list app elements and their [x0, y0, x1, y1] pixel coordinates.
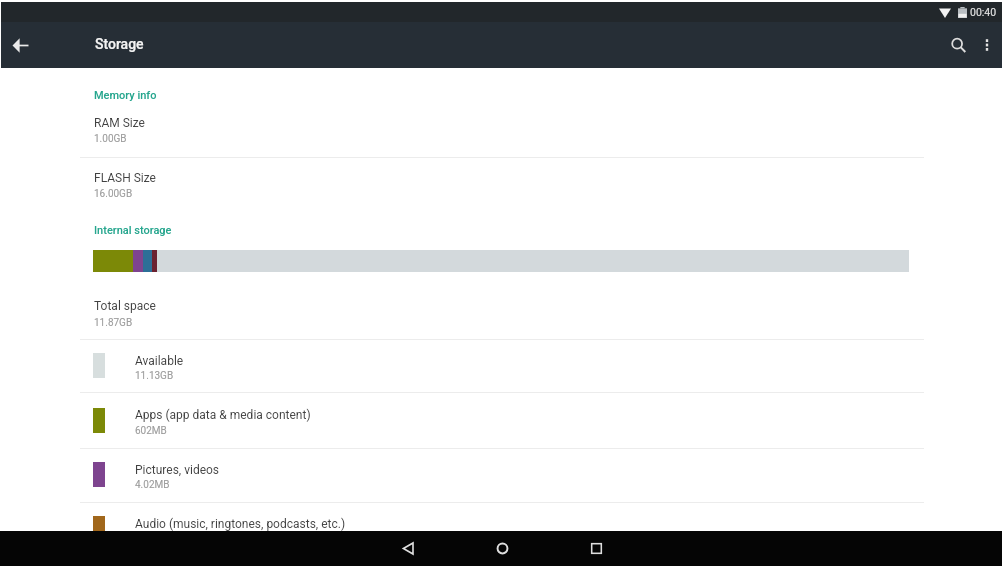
staticText: Storage: [95, 36, 144, 52]
staticText: 602MB: [135, 425, 167, 437]
staticText: 00:40: [970, 6, 997, 18]
staticText: FLASH Size: [94, 171, 156, 185]
button[interactable]: Search: [942, 29, 974, 61]
button[interactable]: Total space: [0, 285, 1002, 339]
staticText: 1.00GB: [94, 133, 127, 145]
staticText: Apps (app data & media content): [135, 408, 311, 422]
staticText: Internal storage: [94, 224, 172, 237]
button[interactable]: Recent apps: [549, 531, 643, 566]
staticText: Available: [135, 354, 184, 368]
staticText: 16.00GB: [94, 188, 133, 200]
button[interactable]: Back: [361, 531, 455, 566]
button[interactable]: RAM Size: [0, 103, 1002, 157]
button[interactable]: More options: [972, 30, 1002, 60]
staticText: Pictures, videos: [135, 463, 220, 477]
staticText: Total space: [94, 299, 156, 313]
staticText: 4.02MB: [135, 479, 170, 491]
staticText: 11.87GB: [94, 317, 133, 329]
staticText: 11.13GB: [135, 370, 174, 382]
staticText: Audio (music, ringtones, podcasts, etc.): [135, 517, 346, 531]
button[interactable]: Navigate up: [6, 31, 34, 59]
button[interactable]: Apps (app data & media content): [0, 393, 1002, 447]
staticText: RAM Size: [94, 116, 145, 130]
button[interactable]: Pictures, videos: [0, 448, 1002, 501]
button[interactable]: Audio (music, ringtones, podcasts, etc.): [0, 502, 1002, 531]
staticText: Memory info: [94, 89, 157, 102]
button[interactable]: Home: [455, 531, 549, 566]
button[interactable]: FLASH Size: [0, 158, 1002, 212]
button[interactable]: Available: [0, 340, 1002, 392]
